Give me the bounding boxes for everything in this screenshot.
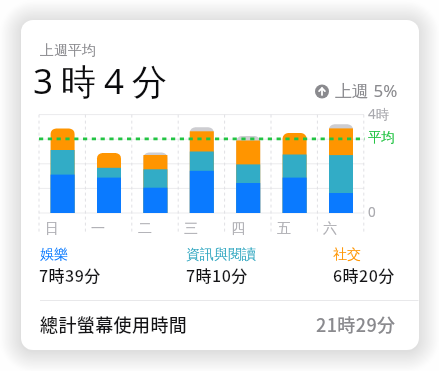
staticText: 六 (323, 220, 337, 238)
staticText: 6時20分 (333, 263, 395, 286)
staticText: 7時39分 (39, 263, 101, 286)
staticText: 資訊與閱讀 (186, 246, 256, 264)
staticText: 21時29分 (316, 311, 396, 337)
staticText: 五 (277, 220, 291, 238)
staticText: 二 (138, 220, 152, 238)
staticText: 7時10分 (186, 263, 248, 286)
staticText: 總計螢幕使用時間 (40, 311, 188, 337)
staticText: 上週 5% (335, 79, 398, 102)
staticText: 上週平均 (40, 42, 96, 60)
staticText: 三 (184, 220, 198, 238)
staticText: 一 (91, 220, 105, 238)
staticText: 0 (368, 203, 376, 221)
staticText: 平均 (368, 129, 395, 146)
staticText: 社交 (333, 246, 361, 264)
button[interactable] (21, 20, 419, 350)
staticText: 3時4分 (33, 57, 176, 105)
staticText: 娛樂 (40, 246, 68, 264)
staticText: 四 (231, 220, 245, 238)
staticText: 4時 (368, 105, 390, 123)
staticText: 日 (45, 220, 59, 238)
